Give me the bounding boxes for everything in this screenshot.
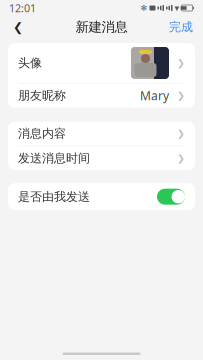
staticText: 12:01 [9, 1, 36, 15]
button[interactable]: 消息内容 [8, 122, 195, 146]
button[interactable]: 发送消息时间 [8, 146, 195, 170]
button[interactable]: 完成 [165, 16, 197, 38]
staticText: 朋友昵称 [18, 88, 66, 103]
staticText: ❯ [177, 128, 185, 139]
staticText: ✻ [140, 3, 147, 13]
staticText: 是否由我发送 [18, 189, 90, 204]
button[interactable]: 是否由我发送 [8, 183, 195, 210]
staticText: Mary [140, 88, 169, 103]
staticText: ❯ [177, 58, 185, 68]
staticText: ❯ [177, 90, 185, 101]
button[interactable]: 朋友昵称 [8, 84, 195, 108]
staticText: 消息内容 [18, 126, 66, 141]
staticText: ❯ [177, 153, 185, 163]
staticText: ❮ [13, 20, 23, 34]
staticText: 新建消息 [75, 19, 127, 35]
button[interactable]: 返回 [6, 16, 30, 38]
staticText: 发送消息时间 [18, 151, 90, 165]
staticText: 头像 [18, 56, 42, 70]
staticText: ▾ [174, 3, 179, 13]
button[interactable]: 头像 [8, 43, 195, 83]
staticText: 完成 [169, 20, 193, 34]
